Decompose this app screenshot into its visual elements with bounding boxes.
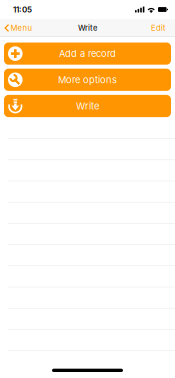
staticText: Edit (151, 23, 166, 33)
button[interactable]: Write (4, 95, 171, 117)
button[interactable]: Add a record (4, 42, 171, 65)
staticText: More options (58, 74, 117, 85)
staticText: Menu (10, 23, 32, 33)
staticText: Write (76, 100, 99, 112)
staticText: Add a record (59, 48, 116, 59)
button[interactable]: More options (4, 69, 171, 91)
button[interactable]: Edit (145, 20, 175, 36)
staticText: Write (78, 23, 97, 33)
button[interactable]: Menu (0, 20, 38, 36)
staticText: 11:05 (13, 5, 32, 14)
